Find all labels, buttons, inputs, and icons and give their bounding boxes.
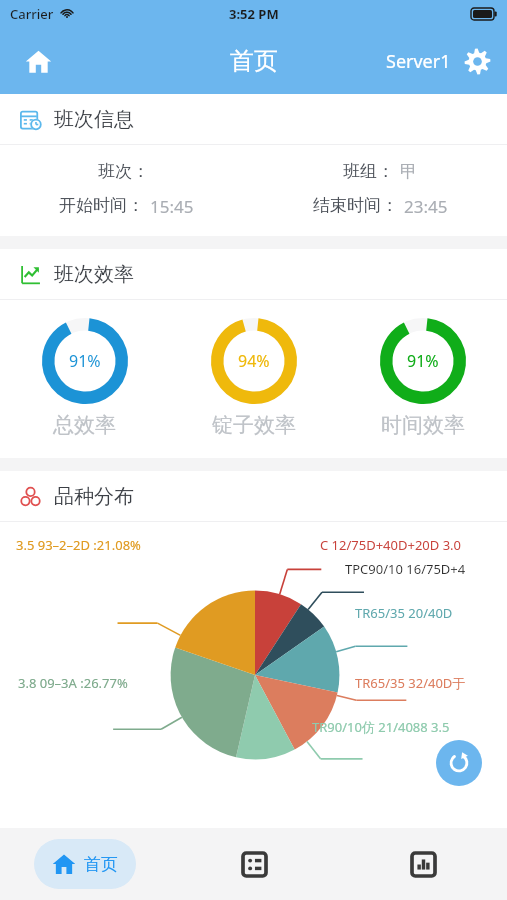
staticText: 首页: [230, 46, 278, 76]
staticText: 结束时间：: [313, 195, 398, 216]
staticText: 91%: [407, 350, 439, 372]
staticText: 班次效率: [54, 262, 134, 287]
button[interactable]: Server1: [386, 49, 451, 74]
button[interactable]: 首页: [34, 839, 136, 889]
staticText: 时间效率: [381, 412, 465, 438]
button[interactable]: 94%: [211, 318, 297, 404]
button[interactable]: Statistics: [399, 840, 447, 888]
staticText: 总效率: [53, 412, 116, 438]
staticText: TPC90/10 16/75D+4: [345, 560, 466, 578]
button[interactable]: 91%: [380, 318, 466, 404]
staticText: 23:45: [404, 195, 448, 218]
button[interactable]: 91%: [42, 318, 128, 404]
staticText: 班次：: [98, 161, 149, 182]
button[interactable]: Home: [18, 41, 58, 81]
staticText: 品种分布: [54, 484, 134, 509]
staticText: TR65/35 20/40D: [355, 604, 453, 622]
staticText: 3.8 09–3A :26.77%: [18, 674, 128, 692]
staticText: 3.5 93–2–2D :21.08%: [16, 536, 141, 554]
staticText: 94%: [238, 350, 270, 372]
button[interactable]: Orders: [230, 840, 278, 888]
staticText: 开始时间：: [59, 195, 144, 216]
staticText: 3:52 PM: [229, 5, 279, 23]
staticText: 锭子效率: [212, 412, 296, 438]
staticText: 首页: [84, 854, 118, 875]
button[interactable]: Settings: [461, 45, 493, 77]
staticText: TR65/35 32/40D于: [355, 674, 466, 692]
button[interactable]: Refresh: [436, 740, 482, 786]
staticText: C 12/75D+40D+20D 3.0: [320, 536, 461, 554]
staticText: 班组：: [343, 161, 394, 182]
staticText: TR90/10仿 21/4088 3.5: [312, 718, 450, 736]
staticText: 15:45: [150, 195, 194, 218]
staticText: 班次信息: [54, 107, 134, 132]
staticText: 甲: [400, 161, 417, 182]
staticText: 91%: [69, 350, 101, 372]
staticText: Carrier: [10, 5, 54, 23]
